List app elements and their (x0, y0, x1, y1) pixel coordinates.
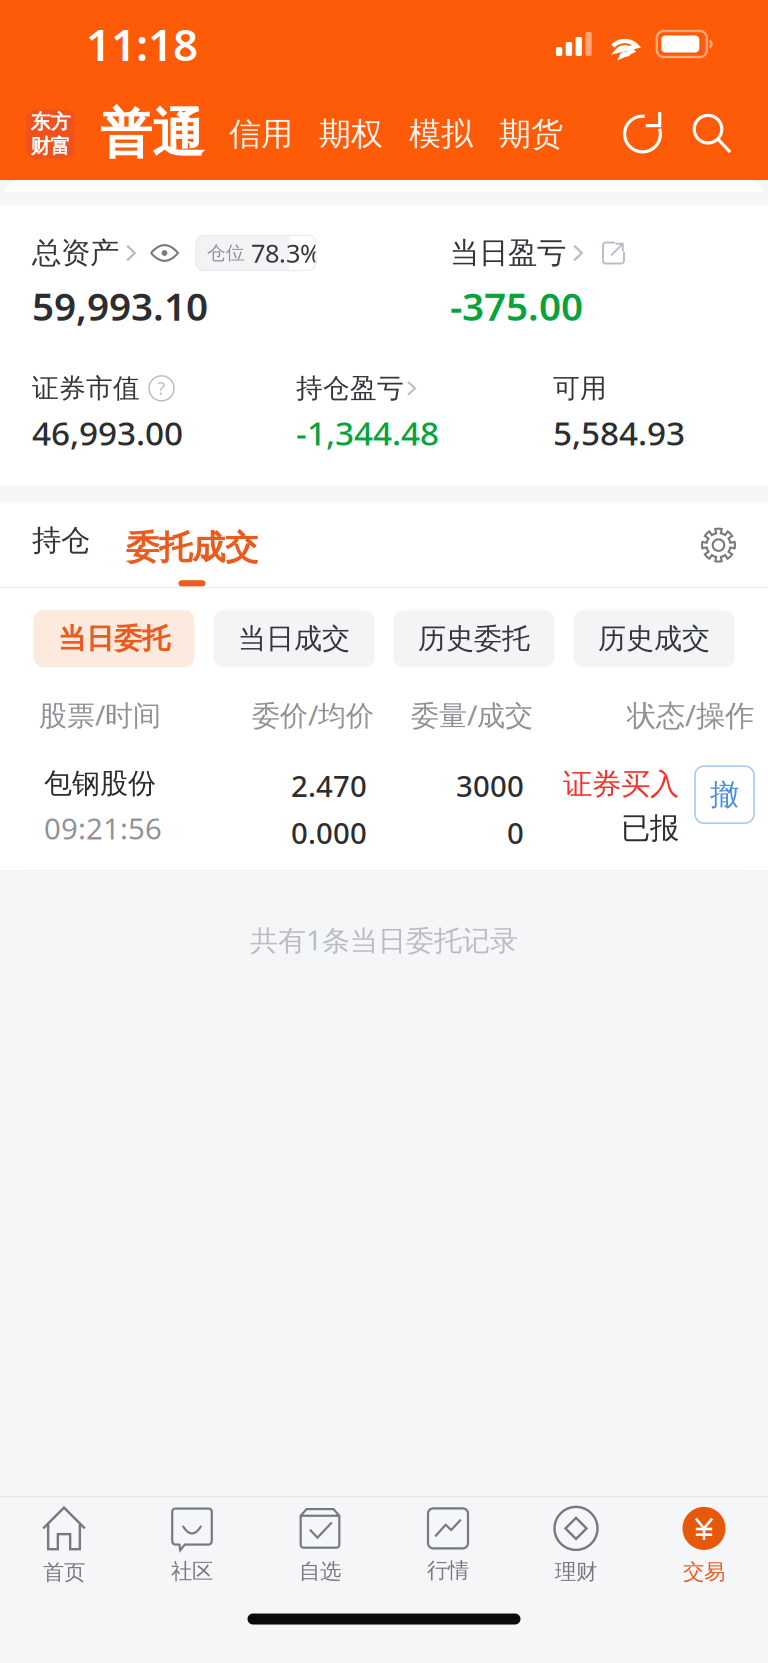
button[interactable]: 设置 (701, 528, 736, 587)
button[interactable]: 委托成交 (126, 527, 258, 587)
staticText: 社区 (171, 1558, 213, 1585)
staticText: 证券买入 (563, 766, 679, 802)
button[interactable]: 搜索 (692, 114, 732, 154)
staticText: 持仓 (32, 523, 90, 559)
button[interactable]: 交易 (640, 1500, 768, 1592)
button[interactable]: 详情 (602, 241, 625, 264)
button[interactable]: 历史委托 (393, 610, 554, 667)
staticText: 期权 (319, 114, 383, 154)
staticText: 11:18 (86, 15, 198, 73)
button[interactable]: 期货 (499, 114, 563, 154)
staticText: 59,993.10 (32, 280, 208, 331)
button[interactable]: 模拟 (409, 114, 473, 154)
button[interactable]: 当日委托 (33, 610, 194, 667)
staticText: 委量/成交 (411, 696, 533, 733)
staticText: 包钢股份 (44, 766, 156, 801)
button[interactable]: 仓位 (196, 235, 316, 270)
staticText: 撤 (710, 777, 739, 813)
button[interactable]: 理财 (512, 1500, 640, 1592)
staticText: 总资产 (32, 235, 119, 271)
button[interactable]: 刷新 (623, 114, 662, 153)
staticText: 已报 (621, 810, 679, 846)
staticText: 当日委托 (58, 621, 170, 656)
button[interactable]: 首页 (0, 1500, 128, 1592)
staticText: 股票/时间 (39, 696, 161, 733)
staticText: 自选 (299, 1558, 341, 1585)
staticText: -1,344.48 (296, 410, 439, 455)
staticText: 模拟 (409, 114, 473, 154)
button[interactable]: 当日成交 (213, 610, 374, 667)
staticText: 持仓盈亏 (296, 372, 404, 405)
staticText: 首页 (43, 1559, 85, 1586)
staticText: 仓位 (207, 241, 245, 264)
staticText: 交易 (683, 1559, 725, 1585)
staticText: 状态/操作 (627, 695, 754, 734)
button[interactable]: 历史成交 (573, 610, 734, 667)
staticText: -375.00 (450, 280, 583, 331)
staticText: 0.000 (291, 813, 367, 852)
button[interactable]: 持仓 (32, 523, 90, 587)
staticText: 理财 (555, 1559, 597, 1585)
staticText: 委价/均价 (252, 696, 374, 733)
staticText: 证券市值 (32, 372, 140, 405)
staticText: ? (157, 377, 165, 400)
staticText: 共有1条当日委托记录 (250, 921, 518, 958)
button[interactable]: 期权 (319, 114, 383, 154)
staticText: 财富 (30, 134, 70, 159)
staticText: 当日成交 (238, 621, 350, 656)
staticText: 当日盈亏 (450, 235, 566, 271)
staticText: 可用 (553, 372, 607, 405)
staticText: 委托成交 (126, 527, 258, 568)
staticText: 78.3% (251, 236, 321, 270)
staticText: 信用 (229, 114, 293, 154)
staticText: 历史成交 (598, 621, 710, 656)
staticText: 普通 (100, 102, 204, 166)
staticText: 历史委托 (418, 621, 530, 656)
staticText: 行情 (427, 1557, 469, 1584)
button[interactable]: 普通 (100, 102, 204, 166)
staticText: 5,584.93 (553, 410, 685, 455)
button[interactable]: 社区 (128, 1500, 256, 1592)
button[interactable]: 包钢股份 (0, 734, 768, 870)
button[interactable]: 自选 (256, 1500, 384, 1592)
button[interactable]: 行情 (384, 1500, 512, 1592)
staticText: 0 (507, 813, 524, 852)
staticText: 46,993.00 (32, 410, 183, 455)
staticText: 3000 (456, 766, 524, 805)
button[interactable]: 隐藏金额 (150, 244, 179, 262)
staticText: 2.470 (291, 766, 367, 805)
staticText: 09:21:56 (44, 809, 162, 848)
button[interactable]: 信用 (229, 114, 293, 154)
staticText: 东方 (30, 109, 70, 134)
staticText: 期货 (499, 114, 563, 154)
